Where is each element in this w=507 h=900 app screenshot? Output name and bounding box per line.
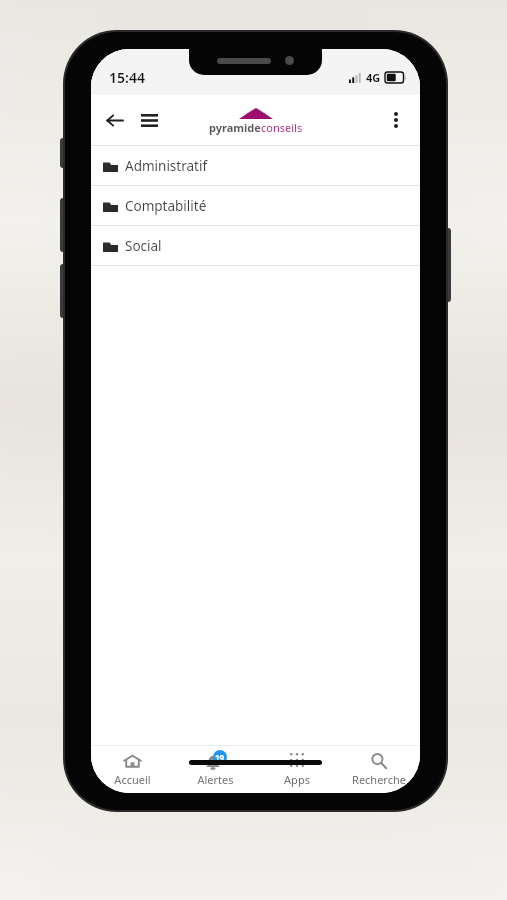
button[interactable]: Menu bbox=[132, 103, 166, 137]
staticText: 4G bbox=[366, 70, 381, 85]
button[interactable]: Accueil bbox=[91, 746, 174, 793]
button[interactable]: Comptabilité bbox=[91, 186, 420, 225]
staticText: Apps bbox=[284, 772, 310, 787]
button[interactable]: 19 bbox=[174, 746, 256, 793]
button[interactable]: Retour bbox=[97, 103, 131, 137]
button[interactable]: Apps bbox=[256, 746, 338, 793]
staticText: Recherche bbox=[352, 772, 406, 787]
button[interactable]: Social bbox=[91, 226, 420, 265]
button[interactable]: Administratif bbox=[91, 146, 420, 185]
button[interactable]: Recherche bbox=[338, 746, 420, 793]
staticText: conseils bbox=[261, 120, 303, 135]
staticText: Accueil bbox=[114, 772, 151, 787]
button[interactable]: Plus d'options bbox=[379, 103, 413, 137]
staticText: Alertes bbox=[197, 772, 234, 787]
staticText: 15:44 bbox=[109, 68, 145, 87]
staticText: pyramide bbox=[209, 120, 261, 135]
staticText: Administratif bbox=[125, 157, 208, 175]
staticText: 19 bbox=[215, 752, 225, 763]
staticText: Comptabilité bbox=[125, 197, 207, 215]
staticText: Social bbox=[125, 237, 162, 255]
